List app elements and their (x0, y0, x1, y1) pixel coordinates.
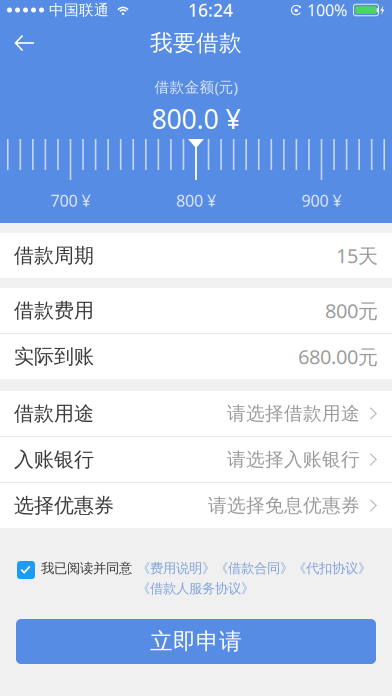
staticText: 800 ¥ (176, 190, 216, 211)
staticText: 选择优惠券 (14, 493, 114, 518)
button[interactable]: 《费用说明》《借款合同》《代扣协议》 (137, 560, 371, 576)
button[interactable]: 选择优惠券 (0, 483, 392, 528)
staticText: 700 ¥ (50, 190, 90, 211)
staticText: 800元 (325, 297, 378, 324)
staticText: 16:24 (188, 0, 233, 21)
staticText: 中国联通 (49, 1, 109, 19)
staticText: 借款用途 (14, 401, 94, 426)
staticText: 100% (307, 0, 347, 21)
staticText: 800.0 ¥ (151, 101, 240, 136)
button[interactable]: 立即申请 (16, 619, 376, 664)
staticText: 《借款人服务协议》 (137, 580, 254, 597)
button[interactable]: 《借款人服务协议》 (137, 580, 254, 597)
staticText: 立即申请 (150, 628, 242, 655)
staticText: 借款费用 (14, 298, 94, 323)
button[interactable]: Agree to terms (17, 561, 35, 579)
button[interactable]: 借款用途 (0, 391, 392, 436)
staticText: 680.00元 (298, 343, 378, 370)
button[interactable]: 入账银行 (0, 437, 392, 482)
staticText: 借款金额(元) (154, 77, 237, 96)
staticText: 请选择免息优惠券 (208, 494, 360, 517)
staticText: 我已阅读并同意 (41, 560, 132, 576)
staticText: 借款周期 (14, 243, 94, 268)
staticText: 实际到账 (14, 344, 94, 369)
staticText: 15天 (336, 242, 378, 269)
staticText: 《费用说明》《借款合同》《代扣协议》 (137, 560, 371, 576)
button[interactable]: Back (0, 23, 49, 63)
staticText: 请选择入账银行 (227, 448, 360, 471)
staticText: 请选择借款用途 (227, 402, 360, 425)
staticText: 900 ¥ (301, 190, 341, 211)
staticText: 我要借款 (150, 29, 242, 57)
staticText: 入账银行 (14, 447, 94, 472)
